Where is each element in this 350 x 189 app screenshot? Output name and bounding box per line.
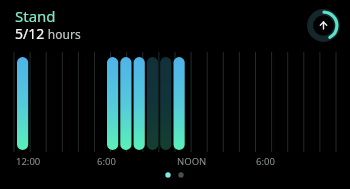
button[interactable] bbox=[0, 0, 350, 189]
staticText: 6:00 bbox=[256, 155, 275, 168]
staticText: 5/12 hours bbox=[15, 24, 81, 43]
staticText: Stand bbox=[15, 6, 56, 26]
staticText: NOON bbox=[177, 155, 207, 168]
staticText: 12:00 bbox=[16, 155, 41, 168]
staticText: 6:00 bbox=[97, 155, 116, 168]
button[interactable]: Stand bbox=[15, 6, 56, 26]
button[interactable]: Stand goal progress bbox=[307, 9, 340, 42]
